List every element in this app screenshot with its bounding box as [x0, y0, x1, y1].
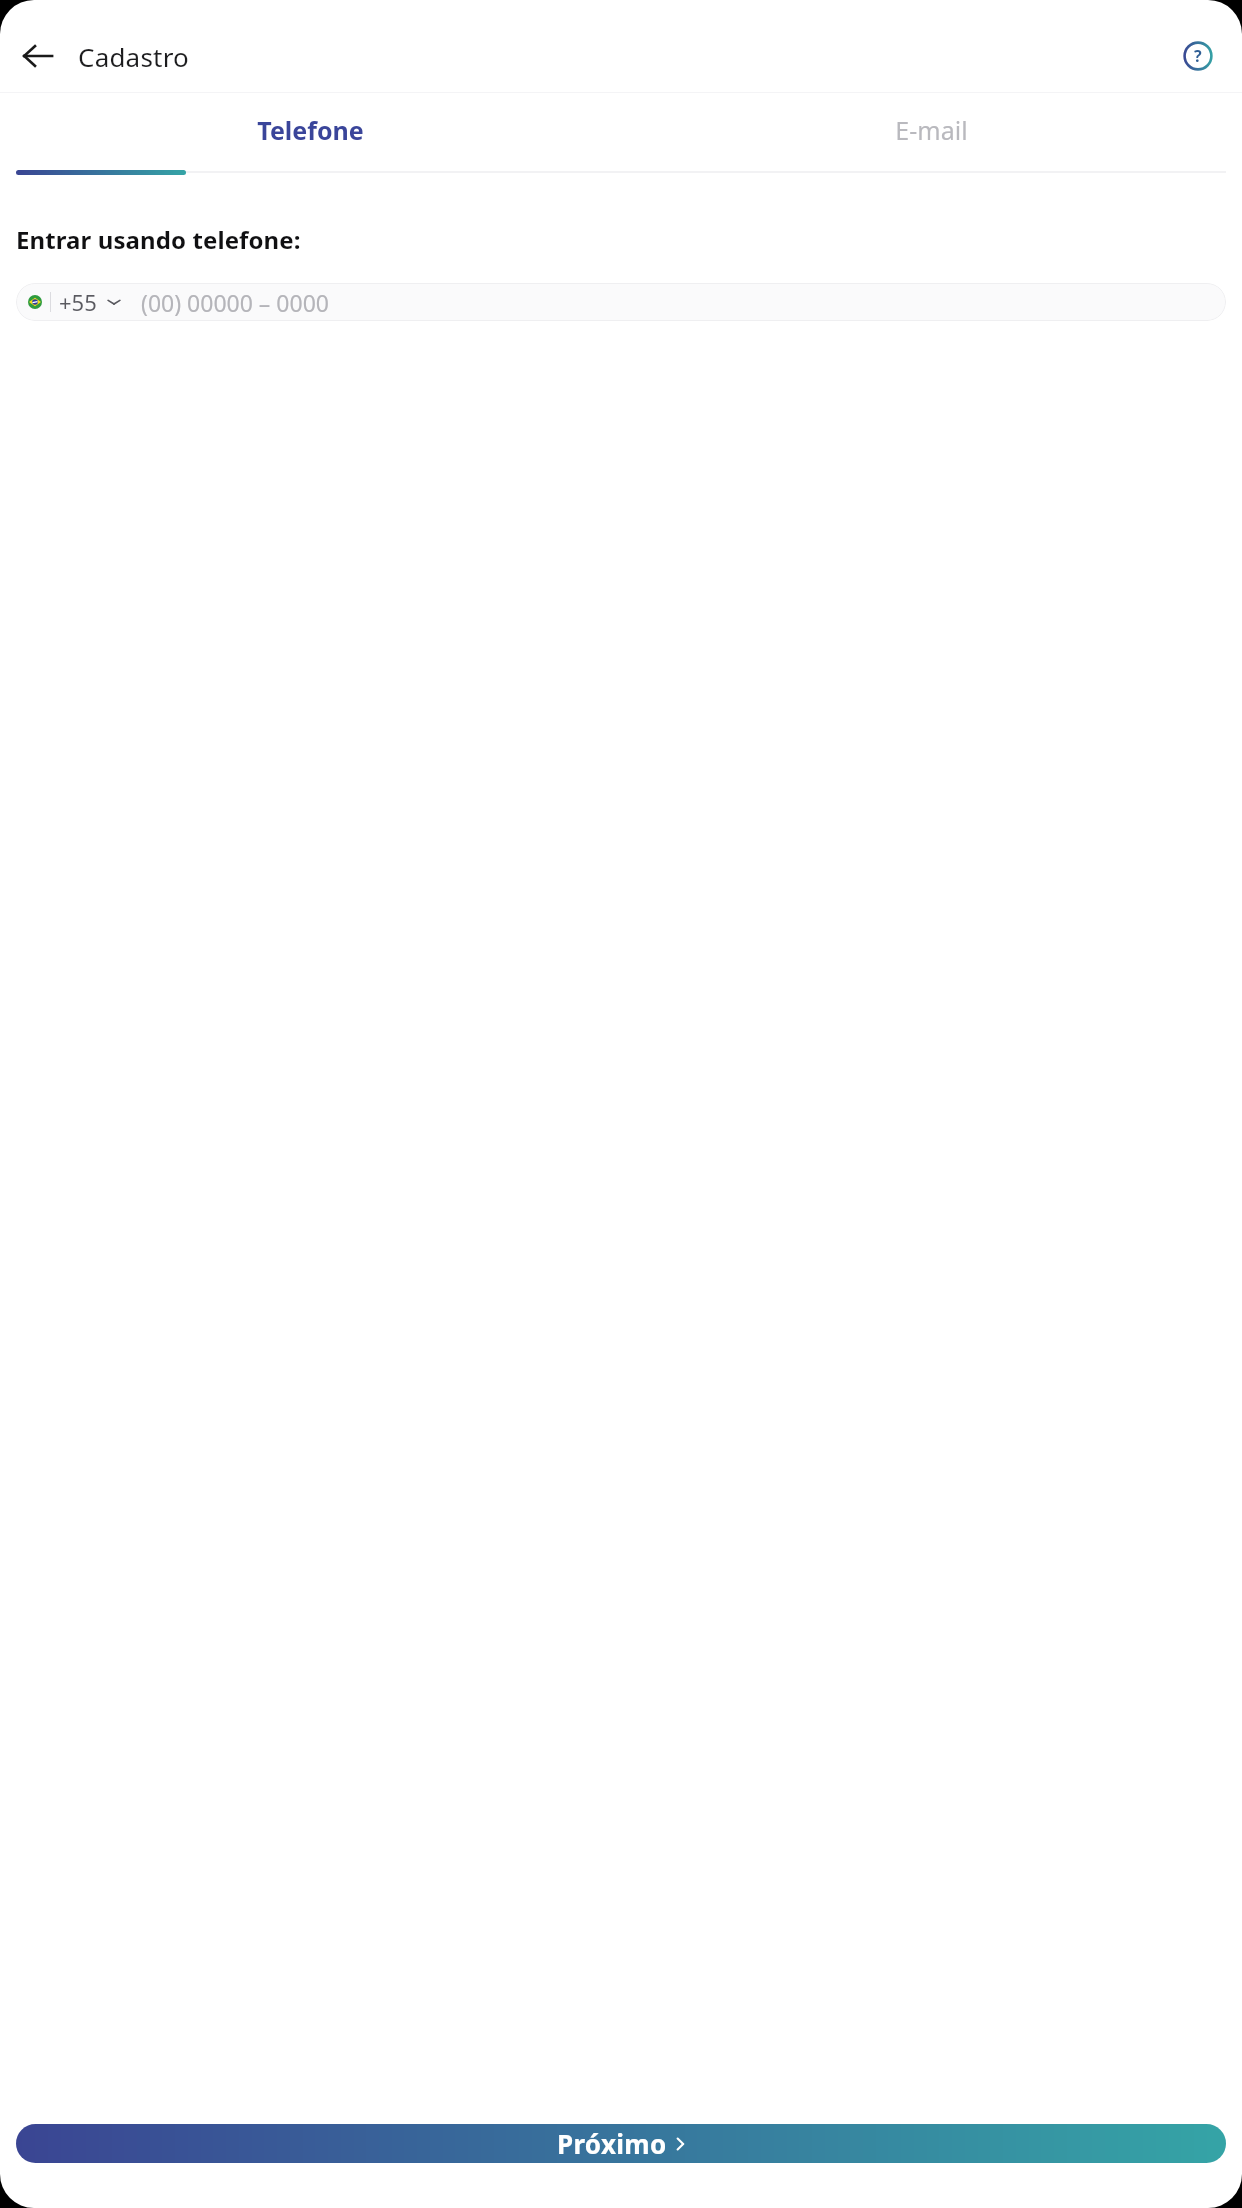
staticText: E-mail	[895, 113, 968, 147]
staticText: Cadastro	[78, 39, 189, 74]
button[interactable]: Próximo	[16, 2124, 1226, 2163]
staticText: +55	[59, 287, 97, 317]
staticText: Entrar usando telefone:	[16, 223, 301, 256]
other: Selecionar país	[107, 297, 121, 307]
button[interactable]: Ajuda	[1172, 30, 1224, 82]
button[interactable]: Voltar	[10, 28, 66, 84]
staticText: (00) 00000 – 0000	[141, 287, 329, 318]
staticText: Telefone	[257, 113, 364, 147]
staticText: ?	[1194, 45, 1202, 67]
staticText: Próximo	[557, 2126, 667, 2161]
button[interactable]: Telefone	[0, 93, 621, 167]
button[interactable]: E-mail	[621, 93, 1242, 167]
button[interactable]: +55	[16, 283, 1226, 321]
